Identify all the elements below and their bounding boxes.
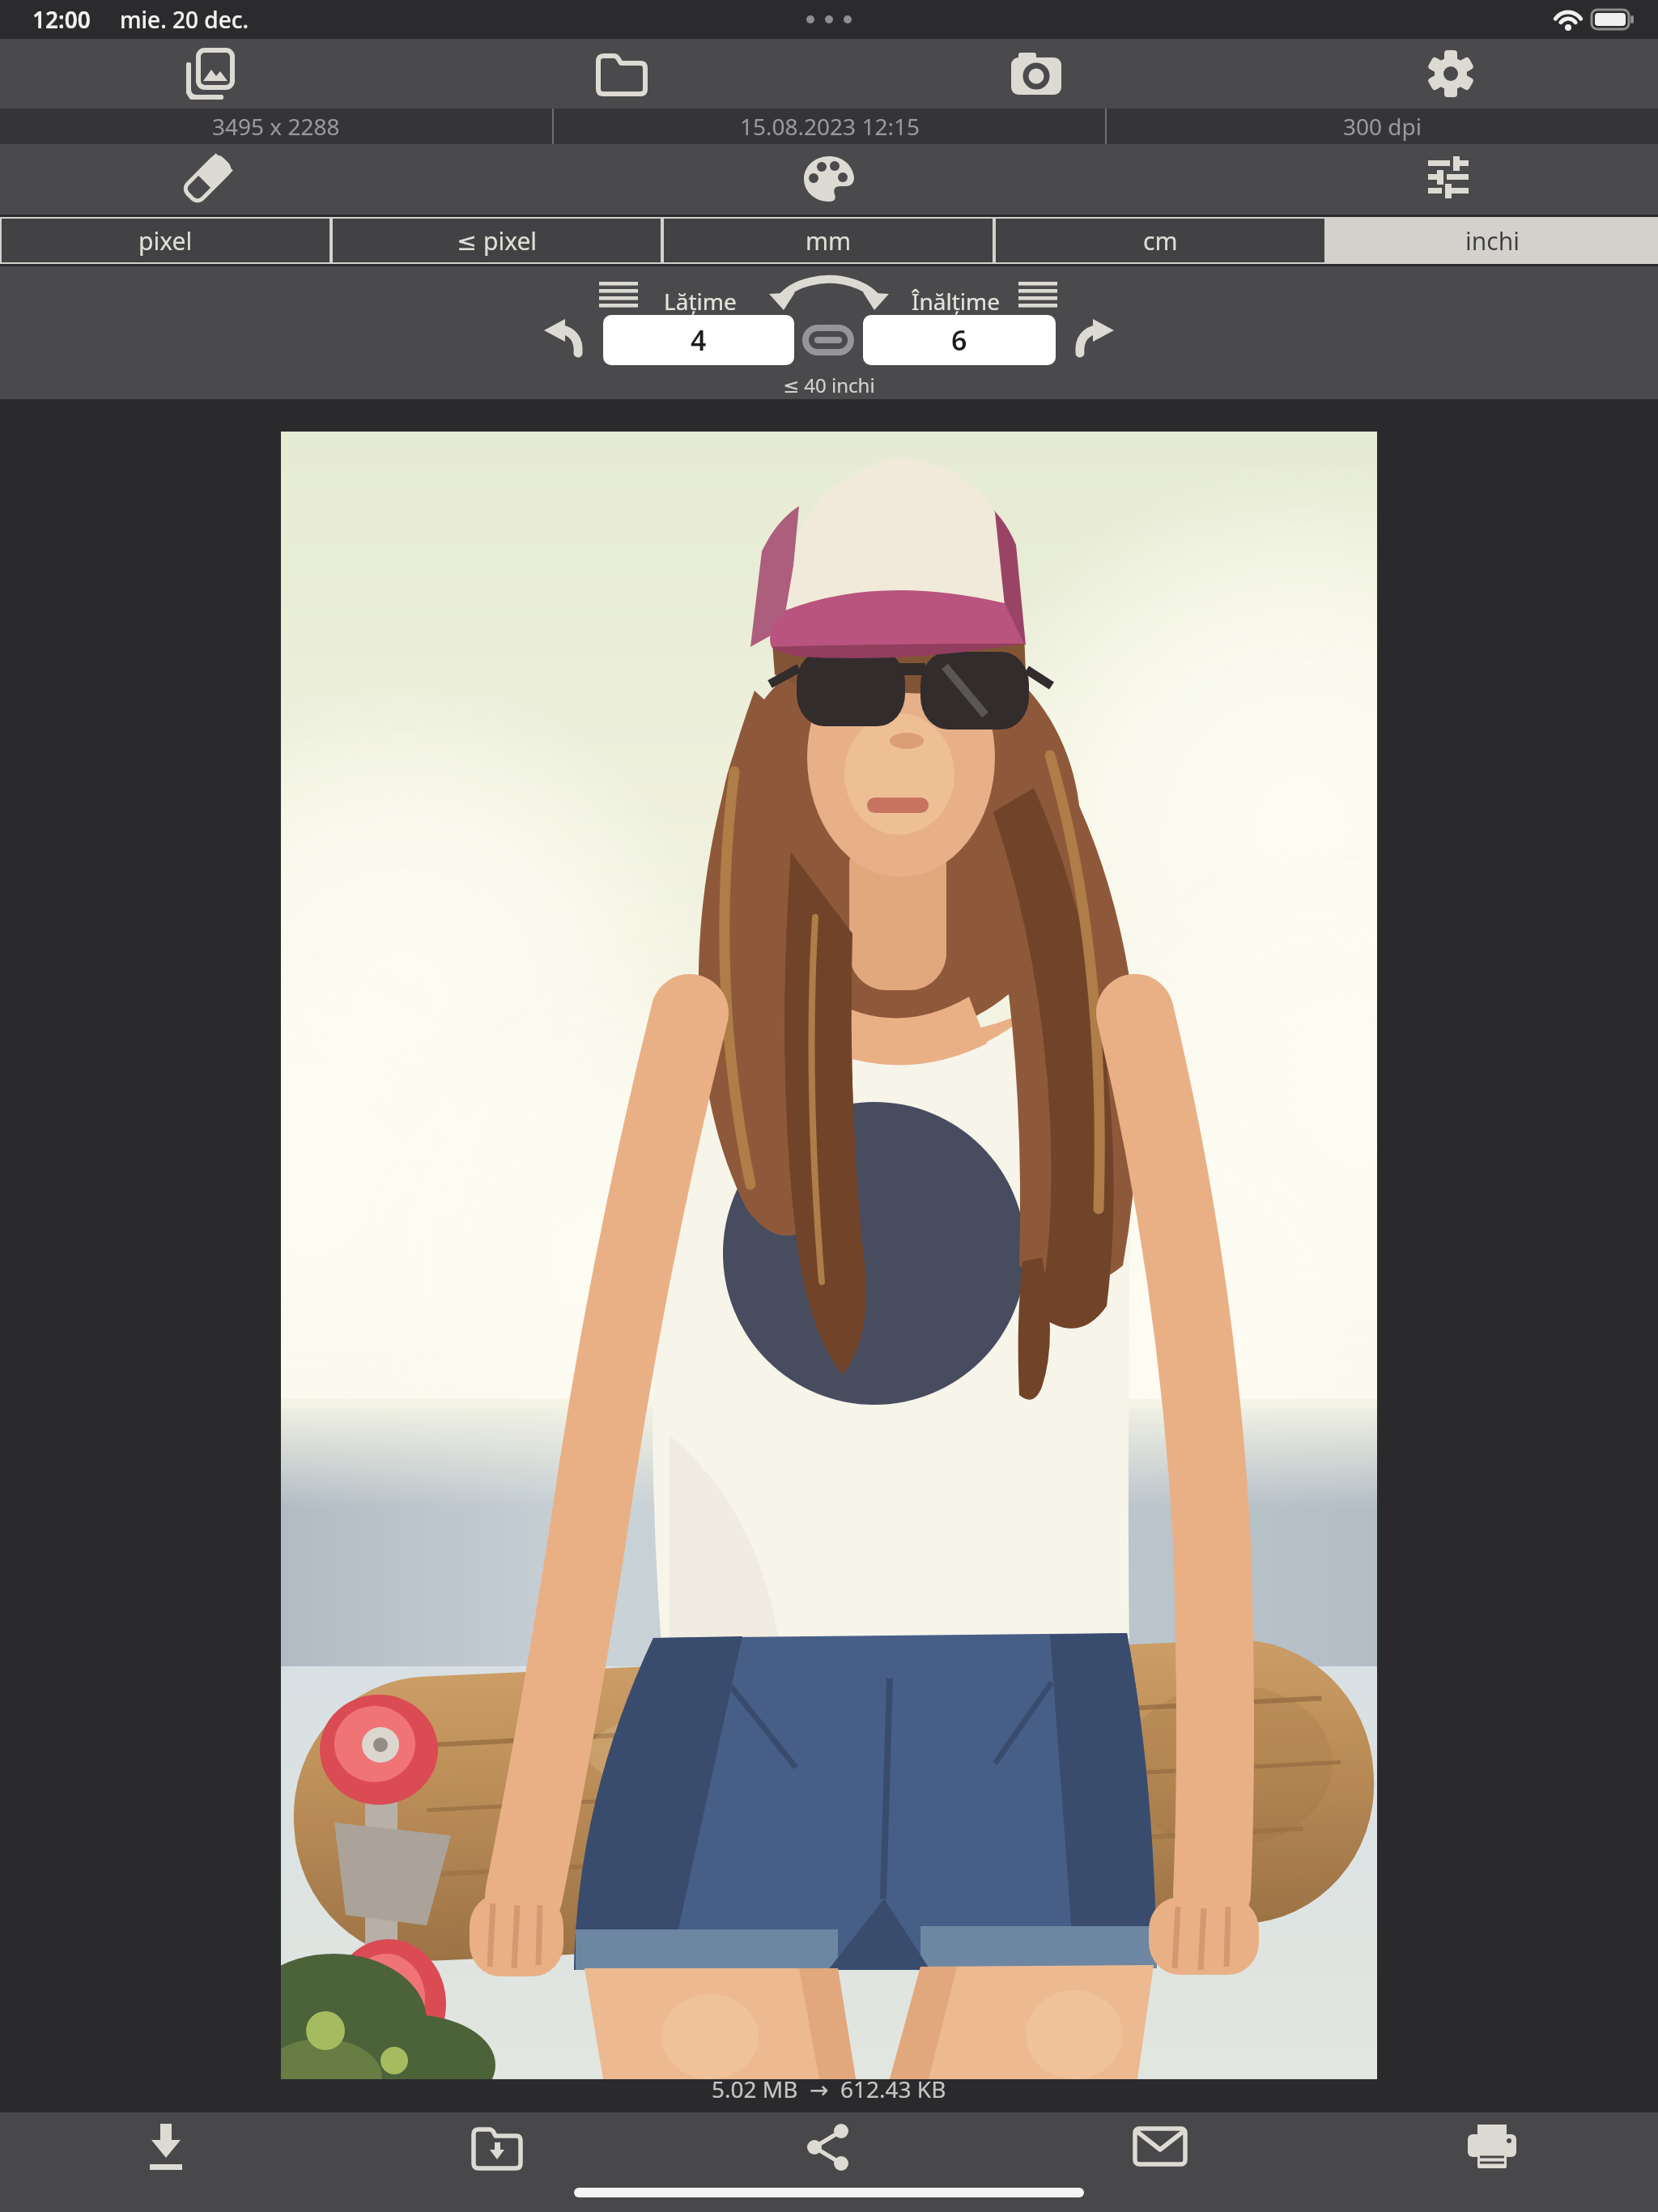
button[interactable] [829, 39, 1243, 108]
staticText: 5.02 MB → 612.43 KB [712, 2074, 946, 2104]
button[interactable] [1243, 39, 1658, 108]
button[interactable]: pixel [2, 219, 329, 262]
button[interactable] [1326, 2112, 1658, 2182]
button[interactable] [804, 325, 854, 357]
button[interactable]: mm [664, 219, 993, 262]
button[interactable] [1015, 278, 1061, 313]
staticText: mie. 20 dec. [120, 4, 249, 35]
button[interactable] [414, 39, 829, 108]
button[interactable]: 6 [863, 315, 1056, 365]
button[interactable] [331, 2112, 662, 2182]
staticText: 3495 x 2288 [212, 111, 340, 142]
button[interactable]: ≤ pixel [333, 219, 661, 262]
staticText: 300 dpi [1343, 111, 1422, 142]
staticText: mm [806, 224, 852, 257]
staticText: ≤ pixel [457, 224, 538, 257]
button[interactable] [662, 2112, 994, 2182]
staticText: Înălțime [912, 286, 1001, 317]
button[interactable] [802, 153, 856, 205]
staticText: ≤ 40 inchi [783, 372, 875, 398]
button[interactable] [1424, 153, 1477, 205]
button[interactable]: inchi [1328, 219, 1656, 262]
button[interactable] [534, 312, 591, 364]
staticText: inchi [1465, 224, 1520, 257]
staticText: Lățime [664, 286, 737, 317]
staticText: 4 [691, 321, 707, 359]
button[interactable] [596, 278, 641, 313]
button[interactable] [994, 2112, 1326, 2182]
staticText: cm [1143, 224, 1178, 257]
button[interactable]: 4 [603, 315, 794, 365]
staticText: pixel [138, 224, 193, 257]
staticText: 15.08.2023 12:15 [740, 111, 920, 142]
button[interactable] [181, 153, 234, 205]
button[interactable] [0, 2112, 331, 2182]
button[interactable]: cm [996, 219, 1324, 262]
button[interactable] [0, 39, 414, 108]
button[interactable] [1067, 312, 1124, 364]
staticText: 6 [951, 321, 967, 359]
staticText: 12:00 [32, 4, 91, 35]
